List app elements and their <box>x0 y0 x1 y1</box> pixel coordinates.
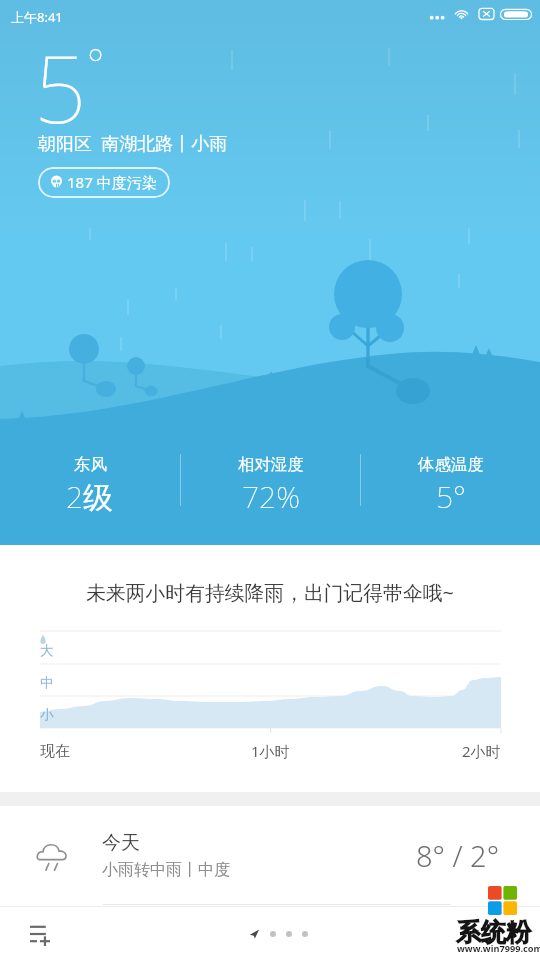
staticText: 中 <box>40 674 54 691</box>
button[interactable]: Add city <box>17 912 61 956</box>
staticText: 今天 <box>102 831 140 855</box>
staticText: 小 <box>40 706 54 723</box>
staticText: 上午8:41 <box>11 8 63 26</box>
staticText: www.win7999.com <box>457 942 540 955</box>
staticText: 大 <box>40 642 54 659</box>
staticText: ° <box>87 36 105 90</box>
staticText: 2小时 <box>462 741 501 761</box>
staticText: 5° <box>436 476 466 517</box>
staticText: 体感温度 <box>418 454 484 475</box>
staticText: 187 中度污染 <box>67 172 157 192</box>
staticText: 现在 <box>40 742 70 761</box>
staticText: 东风 <box>74 454 107 475</box>
staticText: 朝阳区 南湖北路丨小雨 <box>38 131 228 156</box>
staticText: 8° / 2° <box>416 836 500 875</box>
staticText: 5 <box>34 25 87 150</box>
staticText: 小雨转中雨丨中度 <box>102 860 230 880</box>
staticText: 1小时 <box>251 741 290 761</box>
button[interactable]: 今天 <box>0 806 540 905</box>
staticText: 未来两小时有持续降雨，出门记得带伞哦~ <box>0 579 540 606</box>
staticText: 2级 <box>66 476 114 517</box>
button[interactable]: 187 中度污染 <box>38 167 170 198</box>
staticText: 系统粉 <box>456 917 531 948</box>
staticText: 相对湿度 <box>238 454 304 475</box>
staticText: 72% <box>242 476 300 517</box>
